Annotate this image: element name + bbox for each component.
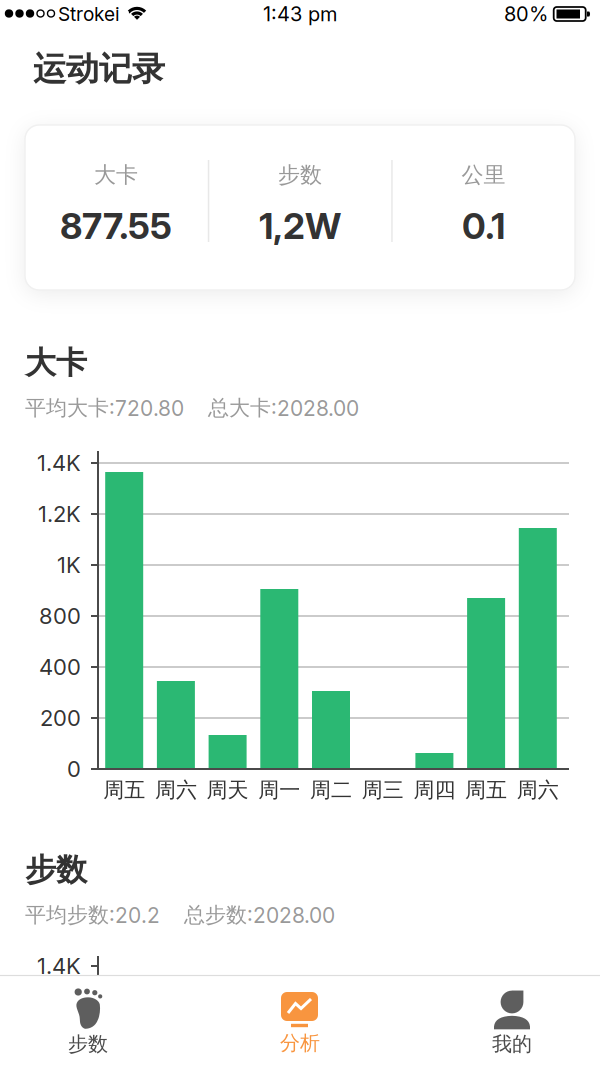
staticText: 0.1 xyxy=(462,204,505,248)
staticText: 公里 xyxy=(461,161,505,189)
staticText: 1K xyxy=(57,552,81,578)
staticText: 周一 xyxy=(258,777,300,803)
staticText: 0 xyxy=(67,756,81,782)
staticText: 周三 xyxy=(362,777,404,803)
staticText: 1.2K xyxy=(38,501,81,527)
staticText: 大卡 xyxy=(94,161,138,189)
staticText: 周五 xyxy=(103,777,145,803)
staticText: 周二 xyxy=(310,777,352,803)
staticText: 平均大卡:720.80 总大卡:2028.00 xyxy=(25,395,359,421)
staticText: 1.4K xyxy=(37,450,81,476)
staticText: 400 xyxy=(39,654,81,680)
staticText: 周天 xyxy=(207,777,249,803)
staticText: 大卡 xyxy=(25,343,87,383)
staticText: 步数 xyxy=(25,850,87,890)
staticText: 我的 xyxy=(492,1031,532,1057)
staticText: 周六 xyxy=(517,777,559,803)
button[interactable]: 我的 xyxy=(400,975,600,1067)
button[interactable]: 步数 xyxy=(0,975,200,1067)
staticText: 平均步数:20.2 总步数:2028.00 xyxy=(25,902,335,928)
staticText: 运动记录 xyxy=(33,48,165,90)
staticText: 1,2W xyxy=(259,204,341,248)
staticText: Strokei xyxy=(58,2,120,25)
staticText: 80% xyxy=(504,2,548,26)
staticText: 步数 xyxy=(278,161,322,189)
staticText: 周六 xyxy=(155,777,197,803)
staticText: 步数 xyxy=(68,1031,108,1057)
staticText: 877.55 xyxy=(60,204,172,248)
staticText: 1:43 pm xyxy=(263,2,337,26)
staticText: 800 xyxy=(39,603,81,629)
staticText: 1.4K xyxy=(37,953,81,979)
staticText: 周四 xyxy=(413,777,455,803)
staticText: 周五 xyxy=(465,777,507,803)
staticText: 分析 xyxy=(280,1030,320,1056)
staticText: 200 xyxy=(40,705,81,731)
button[interactable]: 分析 xyxy=(200,975,400,1067)
